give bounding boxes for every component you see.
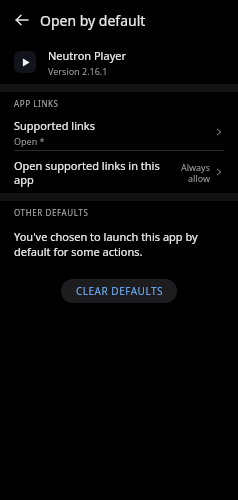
staticText: Neutron Player <box>48 48 126 63</box>
staticText: OTHER DEFAULTS <box>14 207 89 218</box>
staticText: Always allow <box>168 161 210 184</box>
staticText: You've chosen to launch this app by defa… <box>14 229 222 259</box>
staticText: Open by default <box>40 11 146 30</box>
staticText: CLEAR DEFAULTS <box>76 284 163 298</box>
staticText: Supported links <box>14 118 95 133</box>
button[interactable]: CLEAR DEFAULTS <box>61 279 177 303</box>
staticText: APP LINKS <box>14 98 59 109</box>
staticText: Open * <box>14 135 45 147</box>
staticText: Open supported links in this app <box>14 158 162 187</box>
button[interactable]: Back <box>8 6 36 34</box>
button[interactable]: Supported links <box>0 114 238 150</box>
button[interactable]: Open supported links in this app <box>0 151 238 193</box>
staticText: Version 2.16.1 <box>48 65 108 77</box>
